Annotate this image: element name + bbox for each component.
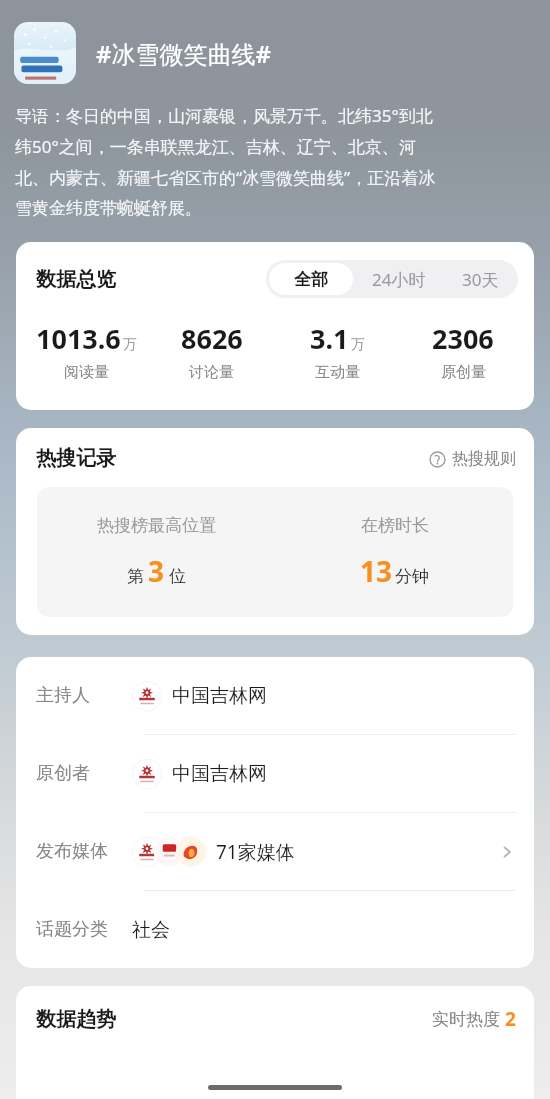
staticText: 万: [123, 336, 137, 354]
staticText: 在榜时长: [361, 515, 429, 536]
staticText: 导语：冬日的中国，山河裹银，风景万千。北纬35°到北: [15, 104, 433, 127]
button[interactable]: [14, 22, 76, 84]
staticText: 话题分类: [36, 918, 108, 941]
staticText: 全部: [294, 269, 328, 290]
staticText: 原创者: [36, 762, 90, 785]
staticText: 数据趋势: [36, 1007, 116, 1032]
button[interactable]: 全部: [269, 263, 353, 295]
staticText: 30天: [462, 268, 499, 291]
staticText: 3: [148, 552, 165, 590]
staticText: 讨论量: [189, 363, 234, 382]
staticText: 纬50°之间，一条串联黑龙江、吉林、辽宁、北京、河: [15, 135, 416, 158]
button[interactable]: 30天: [442, 260, 518, 298]
staticText: 北、内蒙古、新疆七省区市的“冰雪微笑曲线”，正沿着冰: [15, 166, 436, 189]
staticText: 热搜榜最高位置: [97, 515, 216, 536]
staticText: 8626: [181, 320, 243, 357]
staticText: 阅读量: [64, 363, 109, 382]
staticText: 中国吉林网: [172, 684, 267, 708]
button[interactable]: 热搜规则: [429, 449, 516, 469]
staticText: 1013.6: [36, 320, 121, 357]
staticText: 数据总览: [36, 267, 116, 292]
button[interactable]: 原创者: [16, 735, 534, 813]
button[interactable]: 话题分类: [16, 891, 534, 968]
staticText: 社会: [132, 918, 170, 942]
staticText: 主持人: [36, 684, 90, 707]
staticText: 2306: [432, 320, 494, 357]
button[interactable]: 主持人: [16, 657, 534, 735]
staticText: 热搜记录: [36, 446, 116, 471]
staticText: 热搜规则: [452, 449, 516, 469]
staticText: 发布媒体: [36, 840, 108, 863]
staticText: 原创量: [441, 363, 486, 382]
staticText: 互动量: [315, 363, 360, 382]
staticText: 2: [505, 1006, 516, 1032]
staticText: 雪黄金纬度带蜿蜒舒展。: [15, 198, 202, 219]
staticText: #冰雪微笑曲线#: [96, 37, 272, 70]
other: View media list: [498, 843, 516, 861]
button[interactable]: 24小时: [356, 260, 442, 298]
staticText: 位: [169, 566, 186, 587]
staticText: 24小时: [372, 268, 426, 291]
button[interactable]: 发布媒体: [16, 813, 534, 891]
staticText: 中国吉林网: [172, 762, 267, 786]
staticText: 3.1: [310, 320, 349, 357]
staticText: 71家媒体: [216, 839, 295, 865]
staticText: 实时热度: [432, 1009, 500, 1030]
staticText: 分钟: [395, 566, 429, 587]
staticText: 第: [127, 566, 144, 587]
staticText: 13: [360, 552, 393, 590]
staticText: 万: [351, 336, 365, 354]
